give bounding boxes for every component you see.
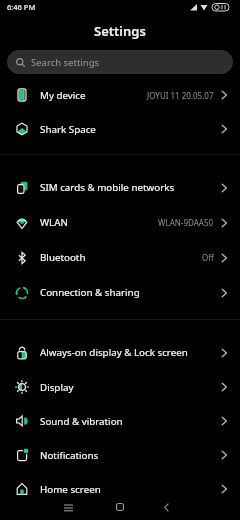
staticText: Settings	[94, 22, 146, 40]
staticText: Notifications	[40, 449, 99, 462]
staticText: Connection & sharing	[40, 286, 140, 299]
button[interactable]: Home screen	[0, 472, 240, 506]
staticText: Search settings	[31, 56, 100, 69]
button[interactable]	[158, 499, 174, 515]
staticText: SIM cards & mobile networks	[40, 181, 175, 194]
staticText: Display	[40, 381, 74, 394]
button[interactable]: Notifications	[0, 438, 240, 472]
button[interactable]: Always-on display & Lock screen	[0, 335, 240, 370]
button[interactable]: Search settings	[7, 50, 233, 74]
button[interactable]: Bluetooth	[0, 240, 240, 275]
button[interactable]: Display	[0, 370, 240, 404]
button[interactable]: My device	[0, 78, 240, 112]
staticText: Sound & vibration	[40, 415, 123, 428]
button[interactable]	[112, 499, 128, 515]
staticText: Bluetooth	[40, 251, 86, 264]
button[interactable]: SIM cards & mobile networks	[0, 170, 240, 205]
staticText: My device	[40, 89, 86, 102]
staticText: 6:46 PM	[7, 2, 36, 12]
staticText: WLAN-9DAA50	[158, 217, 214, 228]
button[interactable]: Shark Space	[0, 112, 240, 146]
staticText: WLAN	[40, 216, 68, 229]
button[interactable]: WLAN	[0, 205, 240, 240]
staticText: Home screen	[40, 483, 101, 496]
staticText: JOYUI 11 20.05.07	[147, 90, 214, 101]
staticText: Shark Space	[40, 123, 96, 136]
button[interactable]: Connection & sharing	[0, 275, 240, 310]
button[interactable]: Sound & vibration	[0, 404, 240, 438]
staticText: Always-on display & Lock screen	[40, 346, 188, 359]
button[interactable]	[60, 499, 76, 515]
staticText: Off	[202, 252, 214, 263]
